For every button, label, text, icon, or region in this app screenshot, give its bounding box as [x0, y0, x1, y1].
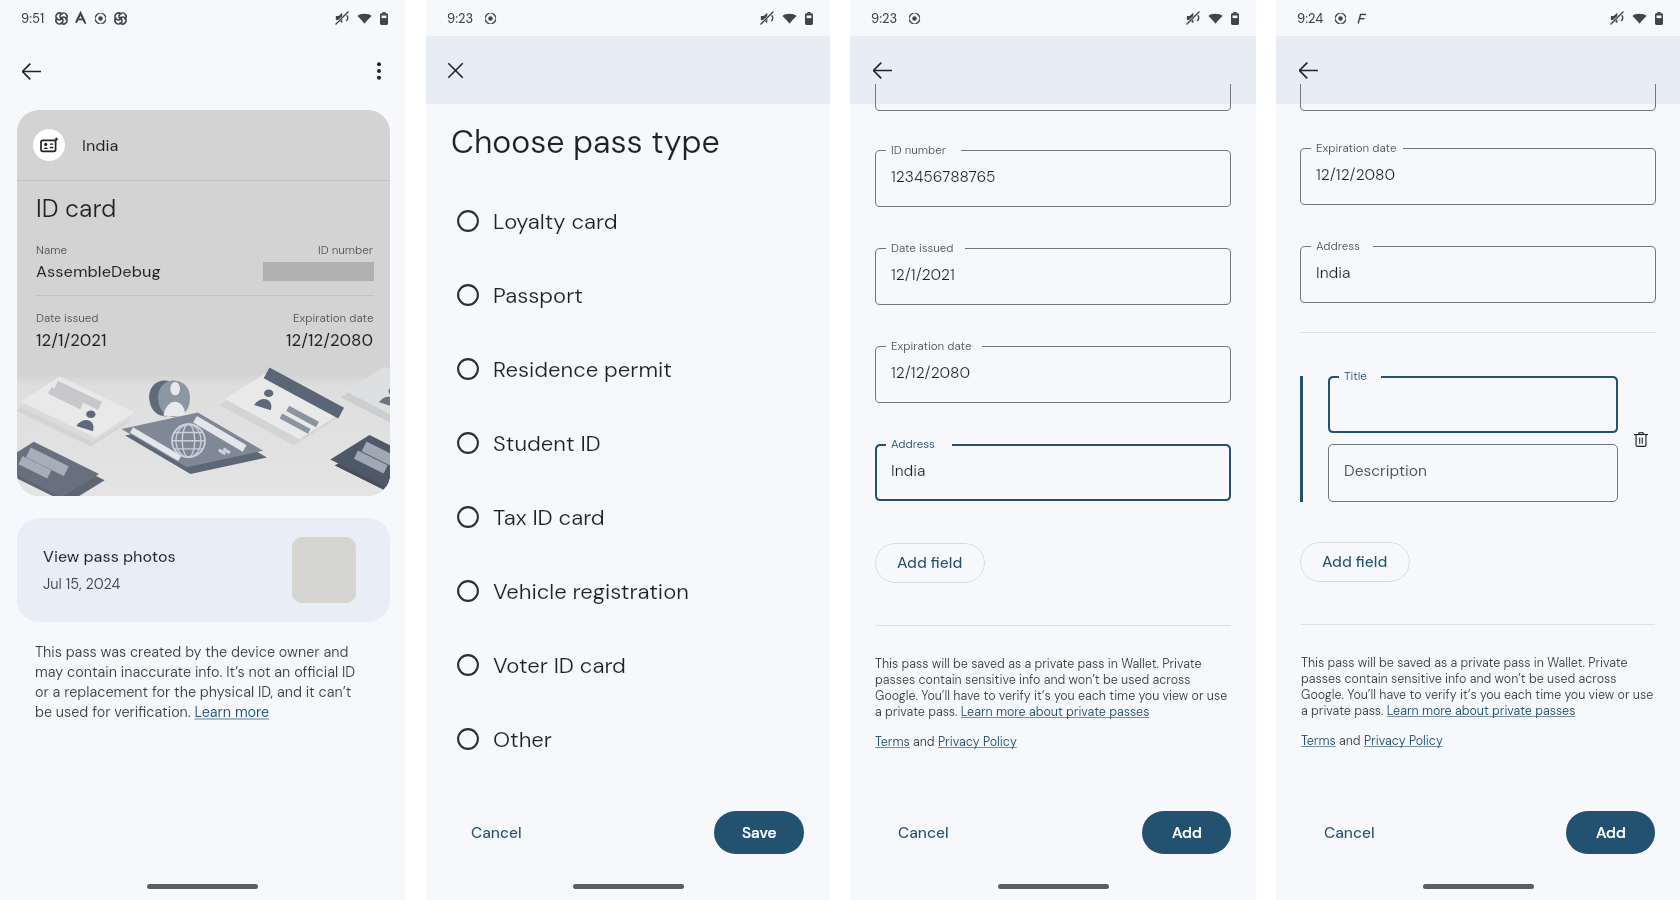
staticText: ID card	[36, 193, 117, 225]
button[interactable]: Add	[1566, 811, 1655, 854]
button[interactable]: Passport	[426, 258, 830, 332]
staticText: Passport	[493, 281, 583, 310]
staticText: Loyalty card	[493, 207, 618, 236]
staticText: Title	[1344, 369, 1367, 384]
button[interactable]: Back	[861, 49, 903, 91]
button[interactable]: Back	[10, 50, 52, 92]
staticText: This pass will be saved as a private pas…	[1301, 655, 1655, 719]
staticText: Description	[1344, 461, 1427, 481]
button[interactable]: Cancel	[884, 813, 963, 853]
staticText: India	[82, 135, 119, 156]
staticText: This pass will be saved as a private pas…	[875, 656, 1231, 720]
staticText: Cancel	[471, 823, 522, 843]
staticText: Expiration date	[1316, 141, 1397, 156]
staticText: Terms and Privacy Policy	[875, 734, 1017, 750]
staticText: Save	[742, 823, 777, 843]
staticText: Residence permit	[493, 355, 672, 384]
staticText: Terms and Privacy Policy	[1301, 733, 1443, 749]
button[interactable]: India	[17, 110, 390, 496]
staticText: Add	[1172, 823, 1202, 843]
staticText: Cancel	[1324, 823, 1375, 843]
staticText: Address	[1316, 239, 1360, 254]
staticText: View pass photos	[43, 546, 176, 567]
staticText: Add	[1596, 823, 1626, 843]
staticText: Voter ID card	[493, 651, 626, 680]
button[interactable]: Voter ID card	[426, 628, 830, 702]
staticText: 9:23	[447, 10, 474, 27]
button[interactable]: More options	[358, 50, 400, 92]
staticText: Other	[493, 725, 552, 754]
staticText: Jul 15, 2024	[43, 575, 121, 594]
button[interactable]: Close	[434, 49, 476, 91]
staticText: 12/12/2080	[891, 363, 971, 383]
staticText: Date issued	[891, 241, 954, 256]
button[interactable]: Add field	[875, 543, 985, 583]
button[interactable]: Loyalty card	[426, 184, 830, 258]
staticText: Cancel	[898, 823, 949, 843]
button[interactable]: Cancel	[457, 813, 536, 853]
staticText: Student ID	[493, 429, 601, 458]
staticText: 9:51	[21, 10, 45, 27]
staticText: 12/1/2021	[891, 265, 955, 285]
staticText: 12/12/2080	[1316, 165, 1396, 185]
button[interactable]: Tax ID card	[426, 480, 830, 554]
staticText: Name	[36, 243, 67, 258]
button[interactable]: Student ID	[426, 406, 830, 480]
staticText: 9:23	[871, 10, 898, 27]
button[interactable]: Back	[1287, 49, 1329, 91]
staticText: 9:24	[1297, 10, 1324, 27]
button[interactable]: View pass photos	[17, 518, 390, 622]
staticText: ID number	[318, 243, 374, 258]
staticText: Tax ID card	[493, 503, 605, 532]
staticText: Add field	[897, 553, 963, 573]
staticText: India	[891, 461, 926, 481]
staticText: ID number	[891, 143, 947, 158]
button[interactable]: Other	[426, 702, 830, 776]
staticText: 12/12/2080	[286, 329, 374, 351]
staticText: AssembleDebug	[36, 261, 161, 282]
staticText: Expiration date	[293, 311, 374, 326]
button[interactable]: Vehicle registration	[426, 554, 830, 628]
button[interactable]: Add field	[1300, 542, 1410, 582]
staticText: Date issued	[36, 311, 99, 326]
staticText: India	[1316, 263, 1351, 283]
button[interactable]: Residence permit	[426, 332, 830, 406]
staticText: Add field	[1322, 552, 1388, 572]
staticText: Choose pass type	[451, 121, 720, 163]
staticText: Expiration date	[891, 339, 972, 354]
staticText: Vehicle registration	[493, 577, 689, 606]
button[interactable]: Delete	[1626, 424, 1656, 454]
staticText: Address	[891, 437, 935, 452]
button[interactable]: Cancel	[1310, 813, 1389, 853]
staticText: 123456788765	[891, 167, 996, 187]
staticText: 12/1/2021	[36, 329, 107, 351]
button[interactable]: Save	[714, 811, 804, 854]
staticText: This pass was created by the device owne…	[35, 643, 363, 722]
button[interactable]: Add	[1142, 811, 1231, 854]
